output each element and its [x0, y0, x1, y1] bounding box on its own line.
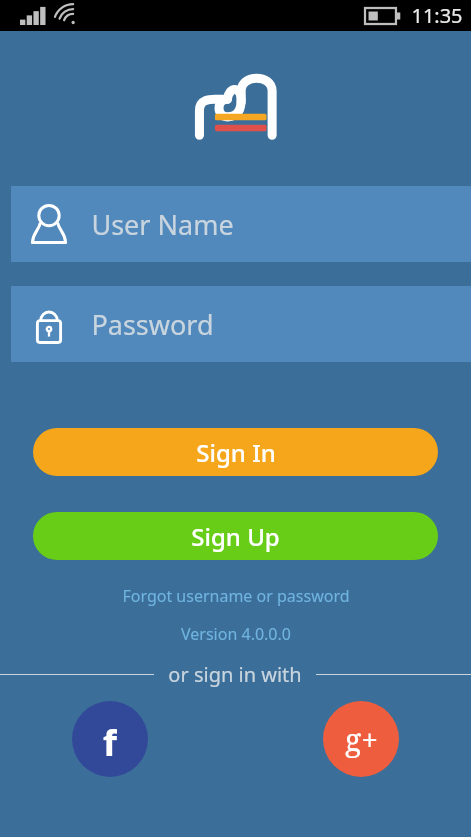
staticText: Password: [91, 306, 214, 343]
staticText: Sign Up: [191, 520, 280, 553]
button[interactable]: Sign Up: [33, 512, 438, 560]
staticText: Version 4.0.0.0: [181, 623, 291, 645]
button[interactable]: Password: [11, 286, 471, 362]
button[interactable]: Sign in with Google Plus: [323, 701, 399, 777]
button[interactable]: Sign In: [33, 428, 438, 476]
staticText: g+: [345, 719, 378, 760]
staticText: f: [103, 718, 117, 760]
button[interactable]: Sign in with Facebook: [72, 701, 148, 777]
staticText: 11:35: [411, 2, 463, 29]
staticText: User Name: [91, 206, 234, 243]
button[interactable]: User Name: [11, 186, 471, 262]
staticText: Sign In: [196, 436, 276, 469]
staticText: or sign in with: [168, 661, 302, 687]
staticText: Forgot username or password: [122, 585, 350, 607]
button[interactable]: Forgot username or password: [0, 585, 471, 607]
